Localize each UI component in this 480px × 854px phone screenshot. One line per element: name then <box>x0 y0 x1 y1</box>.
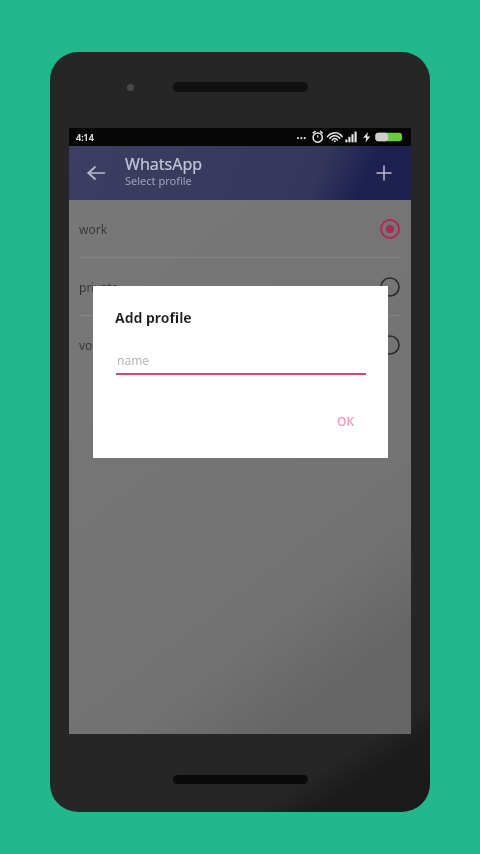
button[interactable]: work <box>69 200 411 258</box>
button[interactable]: vodafone <box>69 316 411 374</box>
button[interactable]: Add profile <box>363 152 405 194</box>
staticText: work <box>79 221 108 237</box>
staticText: 4:14 <box>76 131 94 143</box>
staticText: Select profile <box>125 173 192 188</box>
staticText: WhatsApp <box>125 153 203 175</box>
staticText: OK <box>337 413 354 429</box>
staticText: vodafone <box>79 337 133 353</box>
staticText: private <box>79 279 119 295</box>
button[interactable]: Back <box>75 152 117 194</box>
button[interactable]: private <box>69 258 411 316</box>
staticText: Add profile <box>115 308 192 327</box>
button[interactable]: OK <box>318 404 373 438</box>
staticText: name <box>117 352 150 368</box>
